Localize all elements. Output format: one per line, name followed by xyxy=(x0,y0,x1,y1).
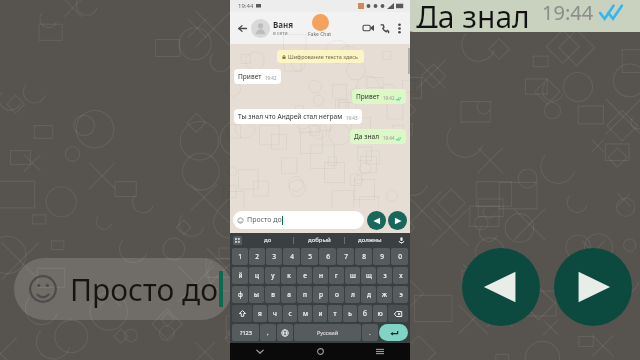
staticText: Просто до xyxy=(247,215,282,225)
staticText: 19:44 xyxy=(542,0,594,26)
button[interactable]: ?123 xyxy=(232,324,259,341)
button[interactable]: 6 xyxy=(319,248,336,265)
staticText: ь xyxy=(348,309,352,318)
button[interactable]: ф xyxy=(232,286,248,303)
staticText: х xyxy=(399,271,403,280)
button[interactable]: ц xyxy=(249,267,264,284)
staticText: Просто до xyxy=(70,269,219,310)
staticText: 1 xyxy=(238,252,242,261)
button[interactable]: 4 xyxy=(283,248,300,265)
button[interactable]: Change language xyxy=(277,324,293,341)
button[interactable]: Call xyxy=(376,20,392,36)
button[interactable]: Русский xyxy=(294,324,361,341)
button[interactable]: м xyxy=(298,305,312,322)
button[interactable]: 0 xyxy=(391,248,408,265)
staticText: 6 xyxy=(326,252,330,261)
button[interactable]: Привет xyxy=(238,72,277,81)
staticText: Ваня xyxy=(273,19,294,30)
button[interactable]: Backspace xyxy=(388,305,408,322)
button[interactable]: я xyxy=(253,305,267,322)
button[interactable]: 8 xyxy=(355,248,372,265)
button[interactable]: н xyxy=(313,267,328,284)
button[interactable]: и xyxy=(313,305,327,322)
button[interactable]: Previous xyxy=(462,248,540,326)
button[interactable]: до xyxy=(242,233,293,247)
button[interactable]: 1 xyxy=(232,248,248,265)
button[interactable]: Да знал xyxy=(354,132,402,141)
button[interactable]: Home xyxy=(290,343,350,360)
button[interactable]: в xyxy=(265,286,280,303)
button[interactable]: Ваня xyxy=(273,19,360,37)
button[interactable]: ы xyxy=(249,286,264,303)
button[interactable]: е xyxy=(297,267,312,284)
staticText: , xyxy=(267,329,269,337)
staticText: должны xyxy=(358,236,382,244)
staticText: н xyxy=(319,271,323,280)
button[interactable]: ю xyxy=(373,305,387,322)
button[interactable]: Enter xyxy=(379,324,408,341)
staticText: ю xyxy=(377,309,383,318)
button[interactable]: Fake Chat xyxy=(308,14,332,38)
button[interactable]: добрый xyxy=(294,233,344,247)
button[interactable]: у xyxy=(265,267,280,284)
staticText: у xyxy=(271,271,275,280)
button[interactable]: х xyxy=(393,267,408,284)
button[interactable]: л xyxy=(345,286,360,303)
button[interactable]: Clipboard xyxy=(233,236,242,245)
button[interactable]: э xyxy=(393,286,408,303)
button[interactable]: ь xyxy=(343,305,357,322)
button[interactable]: п xyxy=(297,286,312,303)
staticText: а xyxy=(287,290,291,299)
button[interactable]: 9 xyxy=(373,248,390,265)
button[interactable]: Emoji xyxy=(260,324,276,341)
button[interactable]: ч xyxy=(268,305,282,322)
button[interactable]: 2 xyxy=(249,248,265,265)
button[interactable]: Привет xyxy=(356,92,402,101)
button[interactable]: с xyxy=(283,305,297,322)
button[interactable]: Send xyxy=(554,248,632,326)
staticText: и xyxy=(318,309,323,318)
button[interactable]: Шифрование текста здесь xyxy=(282,53,359,60)
button[interactable]: б xyxy=(358,305,372,322)
button[interactable]: 3 xyxy=(266,248,282,265)
button[interactable]: Shift xyxy=(232,305,252,322)
button[interactable]: й xyxy=(232,267,248,284)
button[interactable]: Просто до xyxy=(237,211,360,229)
staticText: Да знал xyxy=(354,132,380,141)
staticText: в сети xyxy=(273,30,288,37)
staticText: 19:42 xyxy=(265,75,277,81)
button[interactable]: а xyxy=(281,286,296,303)
button[interactable]: р xyxy=(313,286,328,303)
button[interactable]: к xyxy=(281,267,296,284)
button[interactable]: Previous xyxy=(367,211,386,230)
staticText: 0 xyxy=(398,252,402,261)
button[interactable]: о xyxy=(329,286,344,303)
button[interactable]: ш xyxy=(345,267,360,284)
button[interactable]: 7 xyxy=(337,248,354,265)
button[interactable]: должны xyxy=(345,233,395,247)
button[interactable]: Ты знал что Андрей стал неграм xyxy=(238,112,358,121)
button[interactable]: г xyxy=(329,267,344,284)
button[interactable]: ж xyxy=(377,286,392,303)
button[interactable]: Hide keyboard xyxy=(230,343,290,360)
staticText: к xyxy=(287,271,291,280)
button[interactable]: Voice input xyxy=(395,233,407,247)
button[interactable]: д xyxy=(361,286,376,303)
staticText: 19:44 xyxy=(238,2,254,10)
button[interactable]: щ xyxy=(361,267,376,284)
button[interactable]: More options xyxy=(392,21,406,35)
button[interactable]: Back xyxy=(234,20,250,36)
button[interactable]: 5 xyxy=(301,248,318,265)
staticText: 19:42 xyxy=(383,95,395,101)
staticText: ш xyxy=(350,271,356,280)
button[interactable]: Recents xyxy=(350,343,410,360)
staticText: 5 xyxy=(308,252,312,261)
button[interactable]: Video call xyxy=(360,20,376,36)
staticText: Да знал xyxy=(416,0,530,28)
button[interactable]: . xyxy=(362,324,378,341)
button[interactable]: з xyxy=(377,267,392,284)
staticText: б xyxy=(363,309,367,318)
button[interactable]: т xyxy=(328,305,342,322)
staticText: до xyxy=(264,236,272,244)
button[interactable]: Send xyxy=(388,211,407,230)
